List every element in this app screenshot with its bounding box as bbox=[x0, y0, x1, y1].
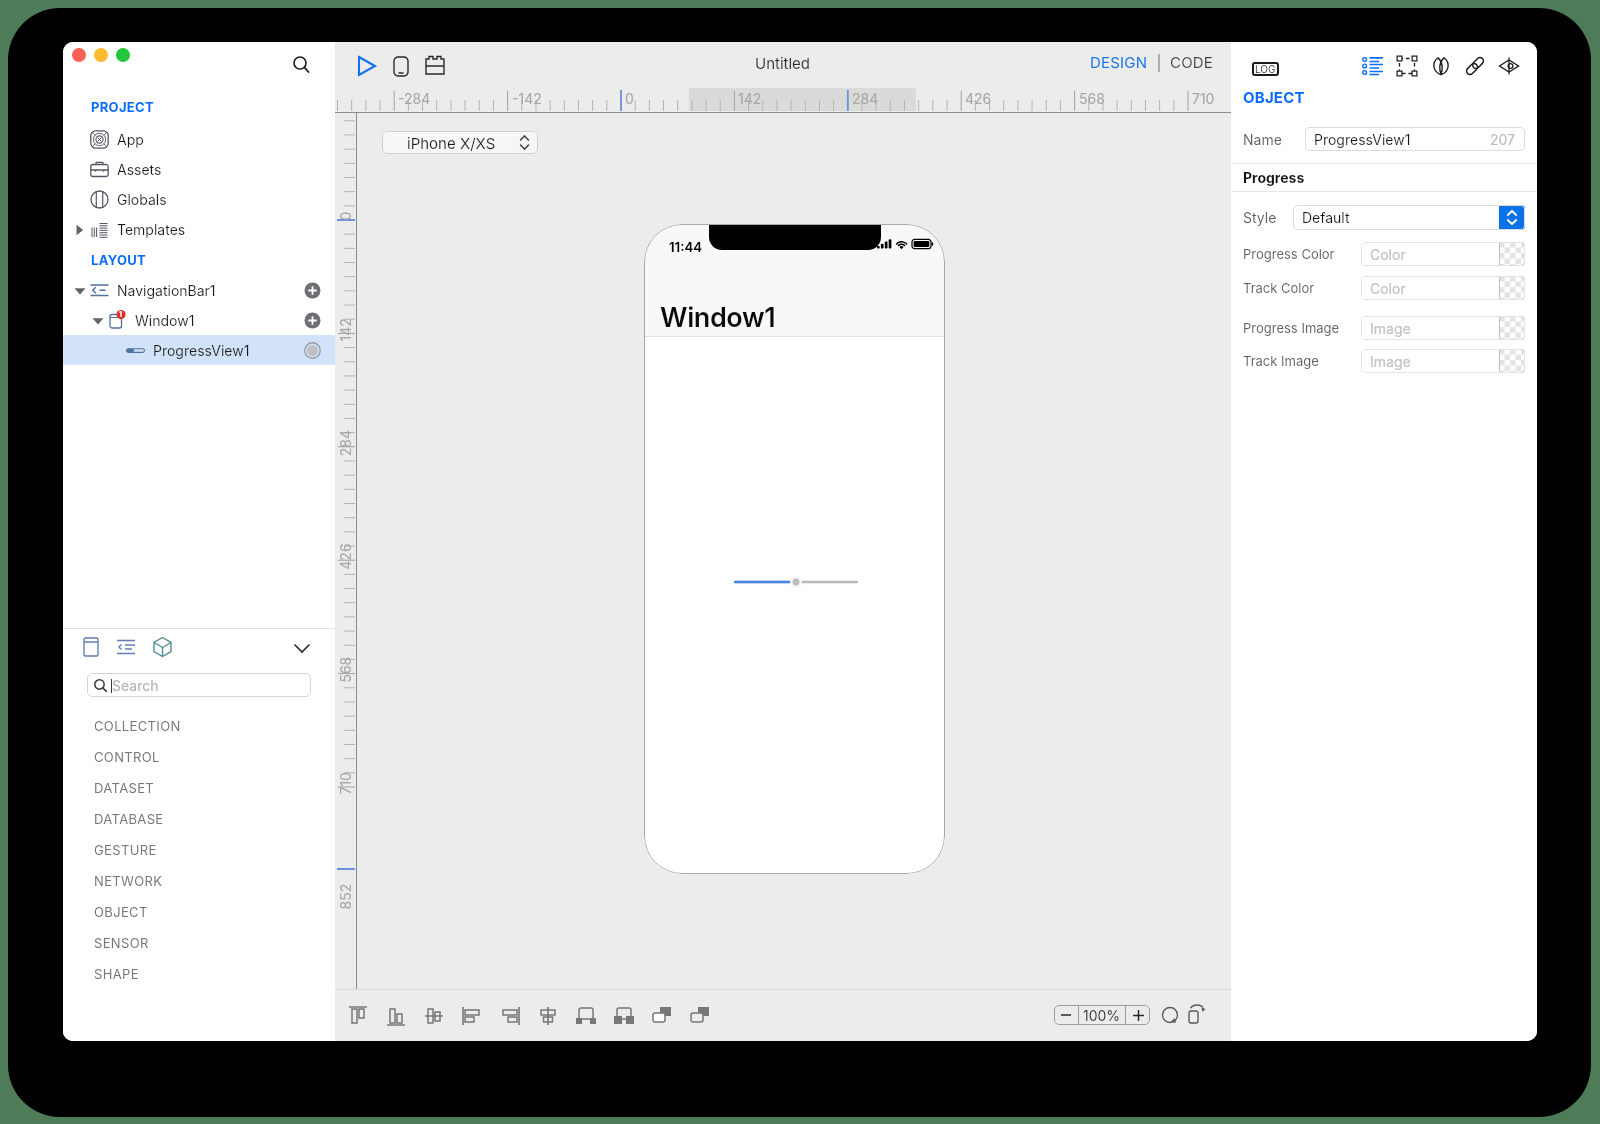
button[interactable]: Templates bbox=[63, 214, 335, 244]
staticText: SENSOR bbox=[94, 935, 149, 951]
button[interactable]: CONTROL bbox=[63, 741, 335, 772]
button[interactable]: iPhone X/XS bbox=[382, 131, 538, 154]
button[interactable]: NavigationBar1 bbox=[63, 275, 335, 305]
button[interactable]: Layout bbox=[1396, 55, 1418, 77]
staticText: 207 bbox=[1490, 131, 1516, 148]
staticText: App bbox=[117, 131, 144, 148]
button[interactable]: Color bbox=[1361, 276, 1525, 300]
button[interactable]: Device preview bbox=[390, 55, 412, 77]
button[interactable]: Align option 5 bbox=[497, 1003, 523, 1029]
button[interactable]: Color bbox=[1361, 242, 1525, 266]
button[interactable]: LOG bbox=[1252, 62, 1279, 76]
button[interactable]: 1 bbox=[63, 305, 335, 335]
staticText: 100% bbox=[1083, 1007, 1121, 1024]
staticText: Style bbox=[1243, 209, 1277, 226]
staticText: Search bbox=[112, 677, 159, 694]
button[interactable]: Add bbox=[304, 312, 321, 329]
button[interactable]: Panel bbox=[81, 636, 104, 659]
staticText: -284 bbox=[398, 90, 431, 107]
button[interactable]: Assets bbox=[63, 154, 335, 184]
button[interactable]: COLLECTION bbox=[63, 710, 335, 741]
staticText: 142 bbox=[738, 90, 762, 107]
staticText: 710 bbox=[1192, 90, 1215, 107]
staticText: Track Color bbox=[1243, 280, 1315, 296]
button[interactable]: ProgressView1 bbox=[1305, 127, 1525, 151]
staticText: Window1 bbox=[135, 312, 195, 329]
button[interactable]: DESIGN bbox=[1090, 53, 1148, 71]
staticText: DATABASE bbox=[94, 811, 164, 827]
button[interactable]: Collapse bbox=[291, 637, 313, 659]
button[interactable]: Zoom to fit bbox=[1161, 1005, 1181, 1025]
button[interactable]: Align option 9 bbox=[649, 1003, 675, 1029]
button[interactable]: List bbox=[116, 636, 139, 659]
staticText: GESTURE bbox=[94, 842, 157, 858]
staticText: SHAPE bbox=[94, 966, 139, 982]
staticText: LOG bbox=[1255, 63, 1276, 75]
button[interactable]: NETWORK bbox=[63, 865, 335, 896]
staticText: | bbox=[1148, 53, 1170, 71]
staticText: Window1 bbox=[660, 301, 776, 334]
button[interactable]: Run bbox=[356, 55, 378, 77]
staticText: 1 bbox=[119, 310, 123, 318]
button[interactable]: Preview bbox=[1498, 55, 1520, 77]
button[interactable]: Image bbox=[1361, 316, 1525, 340]
staticText: Progress Image bbox=[1243, 320, 1340, 336]
button[interactable]: Appearance bbox=[1430, 55, 1452, 77]
button[interactable]: Align option 7 bbox=[573, 1003, 599, 1029]
button[interactable]: Add bbox=[304, 282, 321, 299]
staticText: COLLECTION bbox=[94, 718, 181, 734]
button[interactable]: Globals bbox=[63, 184, 335, 214]
staticText: -142 bbox=[512, 90, 542, 107]
button[interactable]: Links bbox=[1464, 55, 1486, 77]
button[interactable]: Align option 3 bbox=[421, 1003, 447, 1029]
button[interactable]: CODE bbox=[1170, 53, 1214, 71]
button[interactable]: App bbox=[63, 124, 335, 154]
button[interactable]: Search bbox=[87, 673, 311, 697]
staticText: Name bbox=[1243, 131, 1282, 148]
staticText: 11:44 bbox=[669, 239, 703, 255]
staticText: OBJECT bbox=[1243, 88, 1305, 106]
staticText: Untitled bbox=[755, 54, 811, 72]
staticText: CONTROL bbox=[94, 749, 160, 765]
staticText: iPhone X/XS bbox=[407, 134, 496, 152]
staticText: Image bbox=[1370, 353, 1411, 370]
staticText: 568 bbox=[1079, 90, 1105, 107]
staticText: Globals bbox=[117, 191, 167, 208]
staticText: 0 bbox=[625, 90, 634, 107]
button[interactable]: Align option 1 bbox=[345, 1003, 371, 1029]
button[interactable]: Align option 2 bbox=[383, 1003, 409, 1029]
button[interactable]: Align option 4 bbox=[459, 1003, 485, 1029]
staticText: Track Image bbox=[1243, 353, 1319, 369]
button[interactable]: Properties bbox=[1362, 55, 1384, 77]
staticText: 284 bbox=[852, 90, 879, 107]
button[interactable]: ProgressView1 bbox=[63, 335, 335, 365]
button[interactable]: Rotate device bbox=[1187, 1004, 1209, 1026]
button[interactable]: DATABASE bbox=[63, 803, 335, 834]
button[interactable]: Components bbox=[424, 54, 448, 78]
button[interactable]: Objects bbox=[151, 636, 174, 659]
button[interactable]: Default bbox=[1293, 205, 1525, 230]
staticText: ProgressView1 bbox=[153, 342, 250, 359]
button[interactable]: Align option 6 bbox=[535, 1003, 561, 1029]
button[interactable]: Search bbox=[289, 51, 315, 77]
staticText: Color bbox=[1370, 280, 1406, 297]
staticText: Default bbox=[1302, 209, 1350, 226]
button[interactable]: SENSOR bbox=[63, 927, 335, 958]
button[interactable]: Zoom in bbox=[1126, 1005, 1150, 1025]
button[interactable]: Image bbox=[1361, 349, 1525, 373]
button[interactable]: Zoom out bbox=[1054, 1005, 1078, 1025]
staticText: Templates bbox=[117, 221, 186, 238]
staticText: NETWORK bbox=[94, 873, 163, 889]
button[interactable]: OBJECT bbox=[63, 896, 335, 927]
staticText: Assets bbox=[117, 161, 162, 178]
staticText: NavigationBar1 bbox=[117, 282, 216, 299]
button[interactable]: SHAPE bbox=[63, 958, 335, 989]
button[interactable]: GESTURE bbox=[63, 834, 335, 865]
button[interactable]: Align option 8 bbox=[611, 1003, 637, 1029]
staticText: Image bbox=[1370, 320, 1411, 337]
staticText: PROJECT bbox=[91, 99, 154, 115]
button[interactable]: Align option 10 bbox=[687, 1003, 713, 1029]
button[interactable]: DATASET bbox=[63, 772, 335, 803]
staticText: Progress bbox=[1243, 169, 1305, 186]
staticText: Color bbox=[1370, 246, 1406, 263]
